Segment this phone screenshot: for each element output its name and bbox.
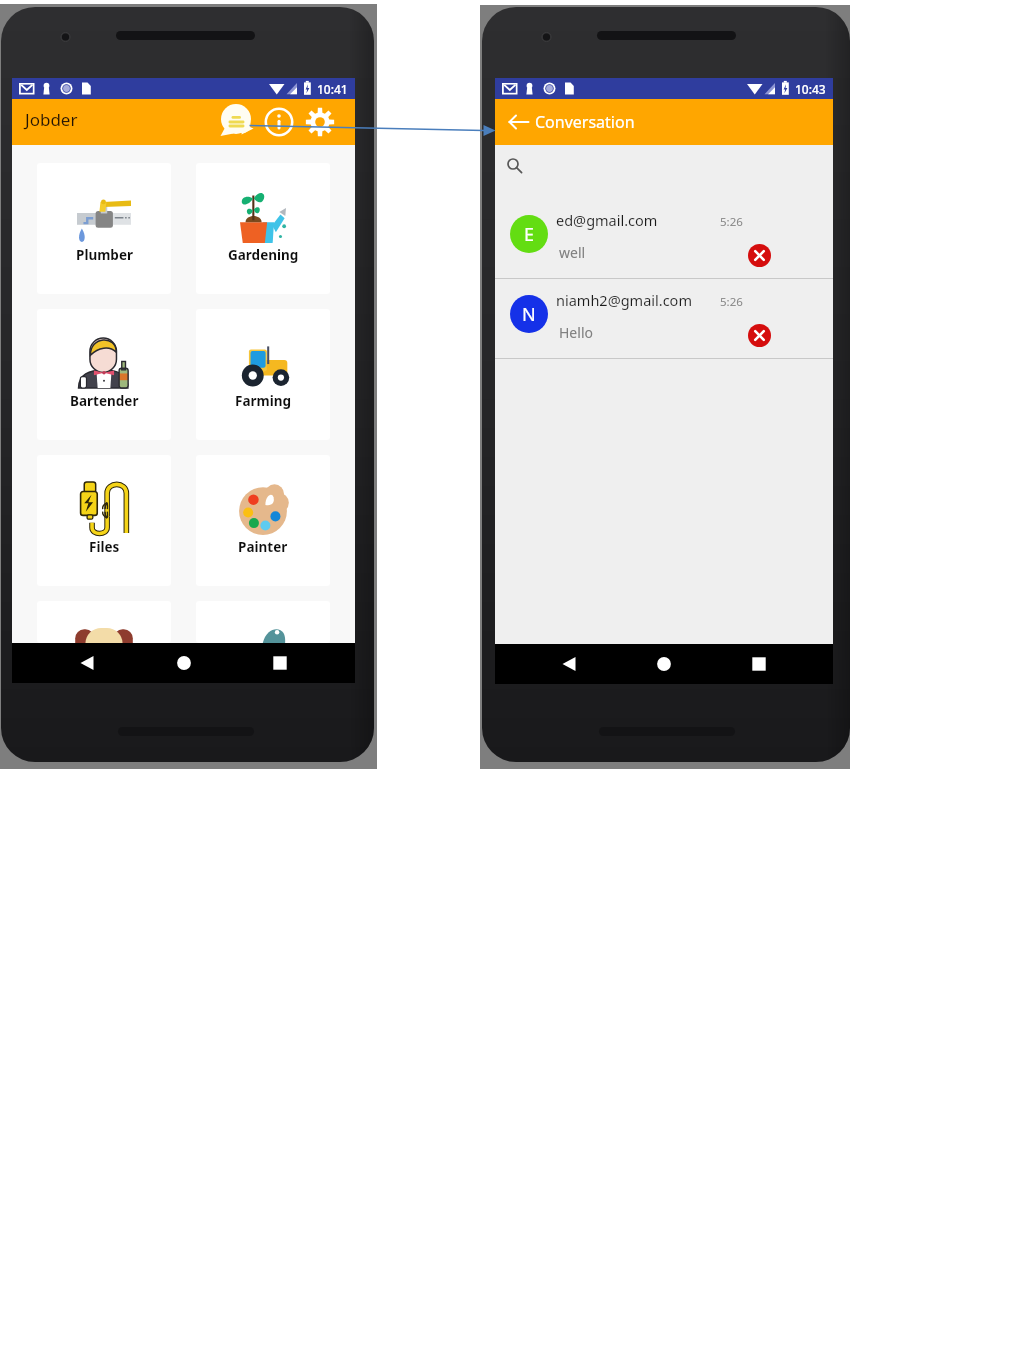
button[interactable]: Settings bbox=[300, 102, 340, 142]
button[interactable]: Messages bbox=[217, 100, 257, 140]
button[interactable]: Plumber bbox=[37, 163, 171, 294]
staticText: Jobder bbox=[25, 108, 78, 131]
button[interactable] bbox=[196, 601, 330, 643]
button[interactable]: Home bbox=[164, 643, 204, 683]
button[interactable]: E bbox=[495, 199, 833, 279]
staticText: N bbox=[522, 302, 536, 327]
staticText: Files bbox=[89, 538, 120, 556]
button[interactable]: Delete bbox=[748, 244, 771, 267]
staticText: 10:43 bbox=[795, 81, 826, 97]
button[interactable]: Recents bbox=[739, 644, 779, 684]
button[interactable] bbox=[37, 601, 171, 643]
staticText: well bbox=[559, 243, 586, 262]
staticText: Conversation bbox=[535, 111, 635, 133]
button[interactable]: Home bbox=[644, 644, 684, 684]
staticText: 10:41 bbox=[317, 81, 348, 97]
staticText: 5:26 bbox=[720, 214, 743, 230]
staticText: Plumber bbox=[76, 246, 133, 264]
button[interactable]: Recents bbox=[260, 643, 300, 683]
button[interactable]: Back bbox=[503, 106, 535, 138]
staticText: Farming bbox=[235, 392, 292, 410]
staticText: Hello bbox=[559, 323, 593, 342]
button[interactable]: Bartender bbox=[37, 309, 171, 440]
button[interactable]: Gardening bbox=[196, 163, 330, 294]
button[interactable]: Info bbox=[259, 102, 299, 142]
button[interactable]: Farming bbox=[196, 309, 330, 440]
button[interactable]: Search bbox=[495, 145, 833, 199]
button[interactable]: Back bbox=[67, 643, 107, 683]
staticText: E bbox=[524, 222, 535, 247]
button[interactable]: Files bbox=[37, 455, 171, 586]
staticText: 5:26 bbox=[720, 294, 743, 310]
staticText: Bartender bbox=[70, 392, 139, 410]
staticText: Painter bbox=[238, 538, 288, 556]
staticText: ed@gmail.com bbox=[556, 210, 658, 230]
button[interactable]: Painter bbox=[196, 455, 330, 586]
staticText: Gardening bbox=[228, 246, 299, 264]
button[interactable]: N bbox=[495, 279, 833, 359]
staticText: niamh2@gmail.com bbox=[556, 290, 692, 310]
button[interactable]: Delete bbox=[748, 324, 771, 347]
button[interactable]: Back bbox=[549, 644, 589, 684]
